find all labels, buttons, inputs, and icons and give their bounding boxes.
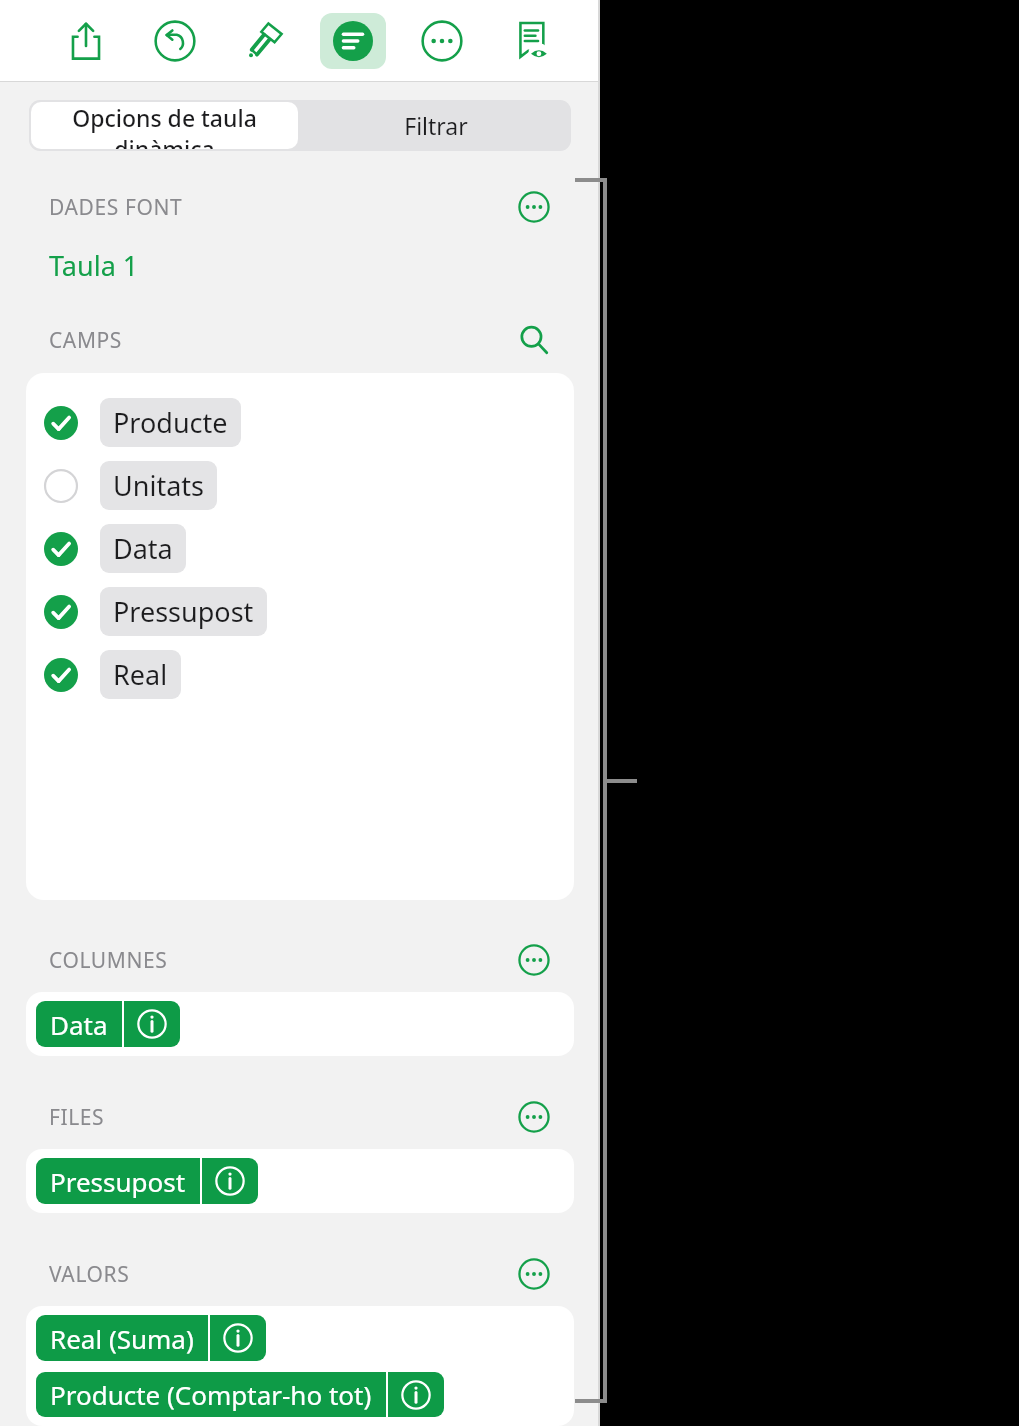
staticText: Filtrar bbox=[404, 110, 468, 141]
button[interactable]: FILES options bbox=[512, 1095, 556, 1139]
button[interactable]: Opcions de taula dinàmica bbox=[31, 102, 298, 149]
button[interactable]: Info about Data bbox=[124, 1001, 180, 1047]
button[interactable]: Pressupost bbox=[36, 1158, 258, 1204]
button[interactable]: Real (Suma) bbox=[36, 1315, 266, 1361]
staticText: Real bbox=[113, 656, 168, 693]
button[interactable]: VALORS options bbox=[512, 1252, 556, 1296]
button[interactable]: Pressupost bbox=[26, 580, 574, 643]
button[interactable]: Unitats bbox=[26, 454, 574, 517]
button[interactable]: Taula 1 bbox=[49, 247, 139, 284]
button[interactable]: Preview document bbox=[501, 13, 561, 69]
staticText: VALORS bbox=[49, 1260, 130, 1289]
staticText: Data bbox=[113, 530, 173, 567]
button[interactable]: Format bbox=[320, 13, 386, 69]
button[interactable]: Undo bbox=[145, 13, 205, 69]
button[interactable]: Format brush bbox=[234, 13, 294, 69]
button[interactable]: Real bbox=[26, 643, 574, 706]
button[interactable]: CAMPS options bbox=[512, 318, 556, 362]
staticText: Pressupost bbox=[113, 593, 254, 630]
button[interactable]: COLUMNES options bbox=[512, 938, 556, 982]
staticText: Producte (Comptar-ho tot) bbox=[50, 1377, 372, 1412]
staticText: Real (Suma) bbox=[50, 1321, 194, 1356]
staticText: Unitats bbox=[113, 467, 204, 504]
staticText: DADES FONT bbox=[49, 193, 183, 222]
button[interactable]: DADES FONT options bbox=[512, 185, 556, 229]
button[interactable]: Data bbox=[26, 517, 574, 580]
staticText: Data bbox=[50, 1007, 108, 1042]
staticText: Producte bbox=[113, 404, 228, 441]
button[interactable]: Producte (Comptar-ho tot) bbox=[36, 1372, 444, 1417]
staticText: COLUMNES bbox=[49, 946, 168, 975]
button[interactable]: Producte bbox=[26, 391, 574, 454]
button[interactable]: Info about Pressupost bbox=[202, 1158, 258, 1204]
button[interactable]: More options bbox=[412, 13, 472, 69]
button[interactable]: Data bbox=[36, 1001, 180, 1047]
staticText: CAMPS bbox=[49, 326, 122, 355]
button[interactable]: Info about Real (Suma) bbox=[210, 1315, 266, 1361]
button[interactable]: Share bbox=[56, 13, 116, 69]
button[interactable]: Filtrar bbox=[300, 100, 571, 151]
staticText: Opcions de taula dinàmica bbox=[31, 102, 298, 149]
staticText: Pressupost bbox=[50, 1164, 186, 1199]
button[interactable]: Info about Producte (Comptar-ho tot) bbox=[388, 1372, 444, 1417]
staticText: FILES bbox=[49, 1103, 105, 1132]
